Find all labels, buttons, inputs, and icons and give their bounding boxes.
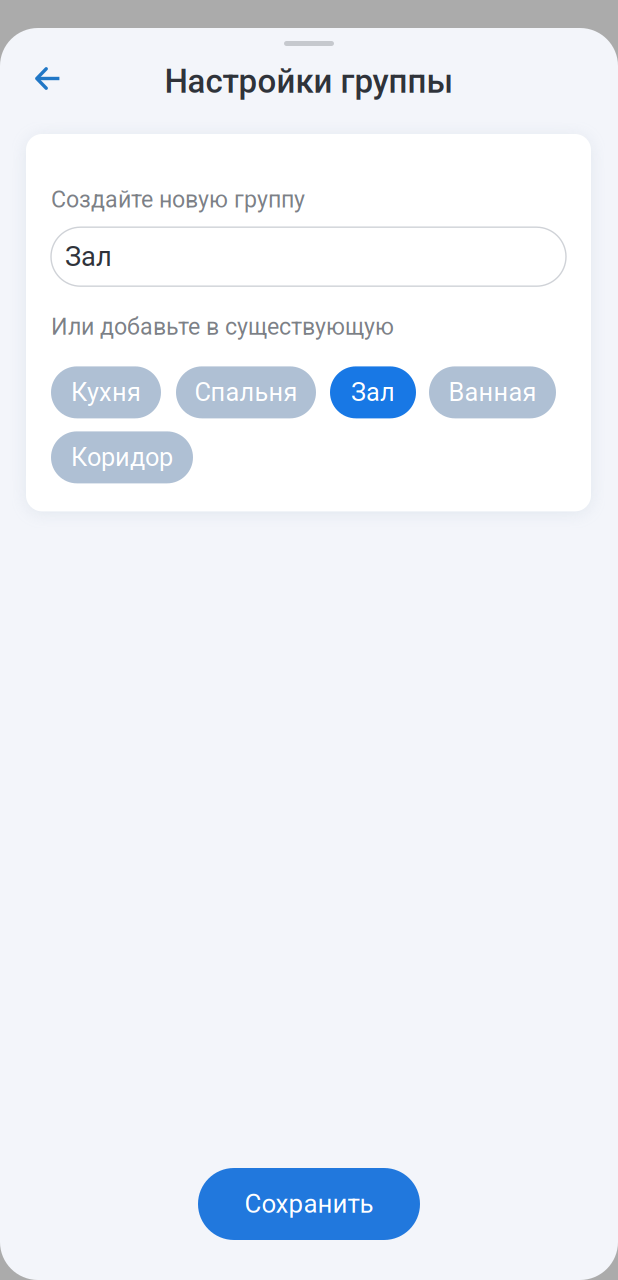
- staticText: Сохранить: [244, 1189, 373, 1219]
- button[interactable]: Назад: [0, 56, 77, 107]
- staticText: Коридор: [71, 442, 173, 472]
- staticText: Спальня: [194, 377, 297, 407]
- button[interactable]: Зал: [330, 366, 416, 418]
- button[interactable]: Сохранить: [198, 1168, 420, 1240]
- staticText: Создайте новую группу: [51, 186, 305, 213]
- button[interactable]: Коридор: [51, 431, 193, 483]
- button[interactable]: Кухня: [51, 366, 161, 418]
- staticText: Или добавьте в существующую: [51, 313, 394, 340]
- staticText: Настройки группы: [164, 62, 453, 101]
- staticText: Ванная: [448, 377, 536, 407]
- button[interactable]: Ванная: [429, 366, 556, 418]
- button[interactable]: Зал: [51, 227, 566, 286]
- staticText: Зал: [65, 241, 112, 273]
- staticText: Кухня: [71, 377, 141, 407]
- staticText: Зал: [351, 377, 395, 407]
- button[interactable]: Спальня: [176, 366, 316, 418]
